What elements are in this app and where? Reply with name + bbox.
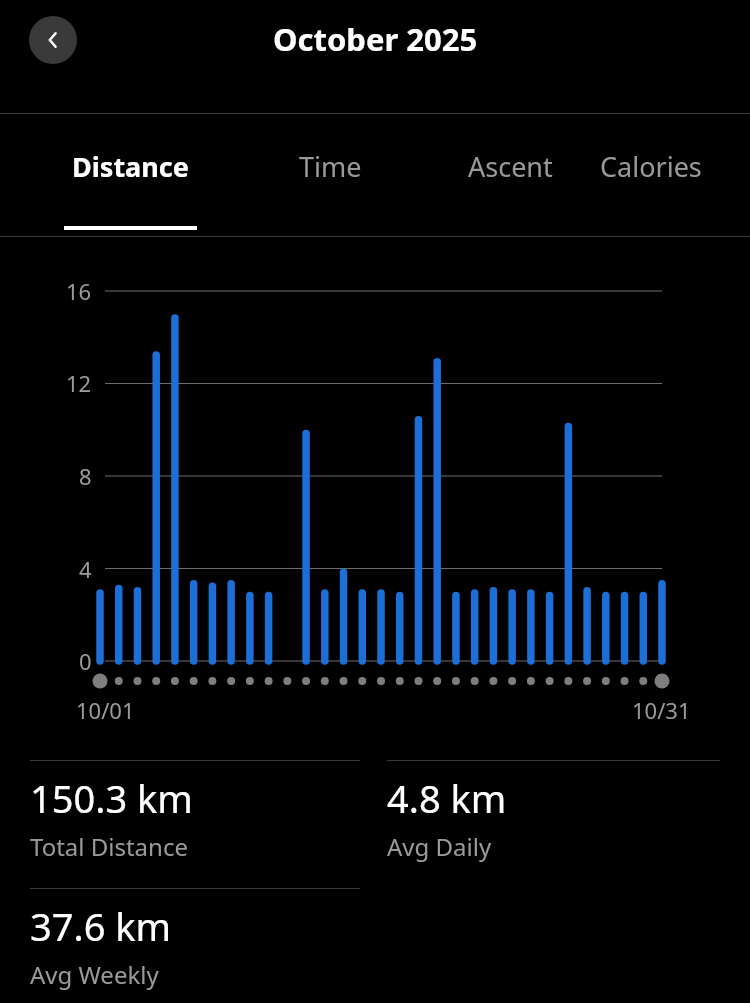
button[interactable]: 37.6 km <box>30 900 360 991</box>
staticText: Avg Weekly <box>30 958 159 991</box>
button[interactable]: 4.8 km <box>387 772 717 863</box>
staticText: 0 <box>79 646 92 676</box>
button[interactable]: Calories <box>600 148 750 226</box>
staticText: Total Distance <box>30 830 188 863</box>
staticText: 12 <box>66 368 92 398</box>
staticText: 150.3 km <box>30 772 193 824</box>
staticText: Calories <box>600 148 702 185</box>
staticText: Ascent <box>468 148 553 185</box>
staticText: 4.8 km <box>387 772 507 824</box>
button[interactable]: Ascent <box>420 148 600 226</box>
button[interactable]: Time <box>240 148 420 226</box>
staticText: 8 <box>79 461 92 491</box>
staticText: 37.6 km <box>30 900 172 952</box>
button[interactable]: 150.3 km <box>30 772 360 863</box>
staticText: 10/31 <box>632 695 691 725</box>
staticText: Time <box>299 148 362 185</box>
staticText: 16 <box>66 276 92 306</box>
button[interactable]: Distance <box>40 148 220 226</box>
staticText: 10/01 <box>76 695 135 725</box>
staticText: Distance <box>72 148 189 185</box>
staticText: 4 <box>79 554 92 584</box>
button[interactable]: Back <box>29 16 77 64</box>
staticText: Avg Daily <box>387 830 492 863</box>
staticText: October 2025 <box>273 18 478 60</box>
